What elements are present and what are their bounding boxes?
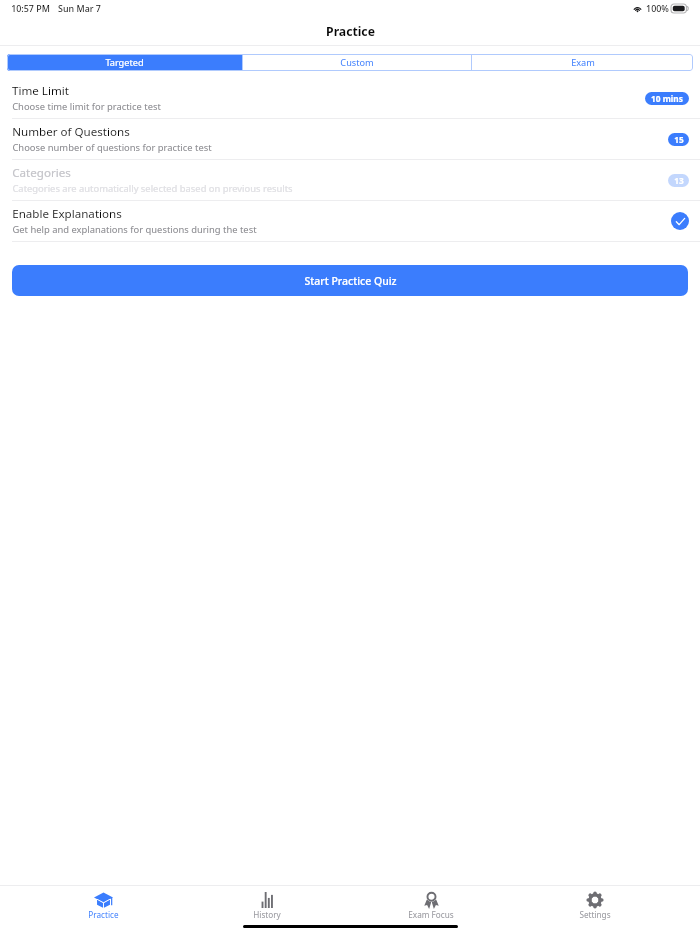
staticText: 13 <box>674 175 684 186</box>
button[interactable]: History <box>185 892 349 920</box>
staticText: 10 mins <box>651 93 683 104</box>
staticText: Time Limit <box>12 83 69 99</box>
button[interactable]: Exam Focus <box>349 892 513 920</box>
staticText: 15 <box>674 134 684 145</box>
button[interactable]: Enable Explanations <box>0 201 700 241</box>
button[interactable]: Number of Questions <box>0 119 700 159</box>
button[interactable]: Start Practice Quiz <box>12 265 688 296</box>
staticText: Settings <box>579 909 611 920</box>
button[interactable]: Categories <box>0 160 700 200</box>
staticText: Sun Mar 7 <box>58 2 101 14</box>
staticText: Targeted <box>105 56 144 69</box>
staticText: Categories are automatically selected ba… <box>12 182 293 195</box>
staticText: Practice <box>326 23 375 40</box>
staticText: 10:57 PM <box>11 2 50 14</box>
button[interactable]: Settings <box>513 892 677 920</box>
staticText: History <box>253 909 281 920</box>
staticText: Categories <box>12 165 71 181</box>
staticText: Number of Questions <box>12 124 130 140</box>
button[interactable]: Exam <box>472 54 693 71</box>
staticText: Exam Focus <box>408 909 454 920</box>
staticText: Get help and explanations for questions … <box>12 223 257 236</box>
button[interactable]: Custom <box>243 54 471 71</box>
staticText: Custom <box>340 56 374 69</box>
staticText: 100% <box>646 2 669 14</box>
staticText: Enable Explanations <box>12 206 122 222</box>
staticText: Choose time limit for practice test <box>12 100 161 113</box>
staticText: Choose number of questions for practice … <box>12 141 212 154</box>
button[interactable]: Practice <box>22 892 185 920</box>
staticText: Start Practice Quiz <box>304 274 397 288</box>
staticText: Practice <box>88 909 119 920</box>
button[interactable]: Targeted <box>7 54 242 71</box>
staticText: Exam <box>571 56 595 69</box>
button[interactable]: Time Limit <box>0 78 700 118</box>
